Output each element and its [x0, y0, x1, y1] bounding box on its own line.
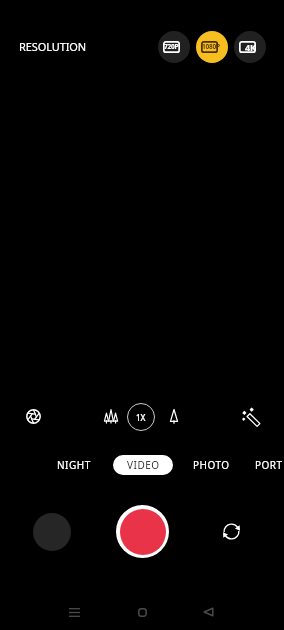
staticText: PHOTO	[193, 458, 230, 472]
staticText: 1080P	[202, 42, 220, 51]
button[interactable]: Switch camera	[219, 519, 244, 544]
button[interactable]: Auto enhance	[236, 402, 265, 431]
button[interactable]: NIGHT	[57, 455, 91, 475]
button[interactable]: Back	[194, 598, 222, 626]
staticText: RESOLUTION	[19, 39, 87, 54]
staticText: 4K	[245, 41, 256, 53]
button[interactable]: PHOTO	[193, 455, 230, 475]
button[interactable]: 1080P	[196, 31, 228, 63]
staticText: 720P	[164, 42, 179, 51]
staticText: NIGHT	[57, 458, 91, 472]
button[interactable]: 1X	[127, 403, 155, 431]
staticText: VIDEO	[127, 458, 160, 472]
button[interactable]: 720P	[158, 31, 190, 63]
button[interactable]: PORT	[255, 455, 283, 475]
button[interactable]: Gallery	[33, 513, 71, 551]
button[interactable]: Recents	[60, 598, 88, 626]
staticText: PORT	[255, 458, 283, 472]
button[interactable]: Record	[116, 505, 169, 558]
button[interactable]: Wide angle	[96, 402, 125, 431]
staticText: 1X	[136, 412, 146, 423]
button[interactable]: Home	[128, 598, 156, 626]
button[interactable]: Telephoto	[159, 402, 188, 431]
button[interactable]: VIDEO	[113, 455, 173, 475]
button[interactable]: Aperture	[19, 402, 48, 431]
button[interactable]: 4K	[234, 31, 266, 63]
